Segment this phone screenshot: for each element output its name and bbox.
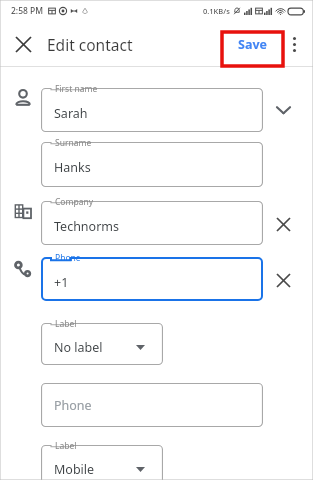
staticText: First name (55, 83, 98, 95)
staticText: No label (54, 339, 103, 356)
staticText: Phone (55, 252, 81, 264)
staticText: Sarah (54, 105, 88, 122)
staticText: Save (238, 36, 267, 53)
staticText: Edit contact (47, 34, 133, 55)
button[interactable]: Phone (41, 383, 263, 427)
staticText: Label (55, 440, 77, 452)
button[interactable]: Label (41, 323, 163, 365)
staticText: Surname (55, 137, 92, 149)
button[interactable]: More options (279, 29, 309, 59)
button[interactable]: Clear field (268, 265, 298, 295)
staticText: Company (55, 196, 94, 208)
staticText: Mobile (54, 461, 95, 478)
staticText: Technorms (54, 218, 119, 235)
staticText: 2:58 PM (11, 5, 44, 17)
button[interactable]: Expand name fields (268, 95, 298, 125)
staticText: +1 (54, 274, 69, 291)
button[interactable]: Phone (41, 257, 263, 301)
button[interactable]: Company (41, 201, 263, 245)
staticText: Hanks (54, 159, 91, 176)
staticText: Label (55, 318, 77, 330)
button[interactable]: Close (6, 27, 40, 61)
button[interactable]: Save (232, 32, 273, 57)
button[interactable]: First name (41, 88, 263, 132)
button[interactable]: Clear field (268, 209, 298, 239)
button[interactable]: Label (41, 445, 163, 480)
staticText: 0.1KB/s (203, 6, 230, 16)
staticText: Phone (54, 397, 92, 414)
button[interactable]: Surname (41, 142, 263, 187)
